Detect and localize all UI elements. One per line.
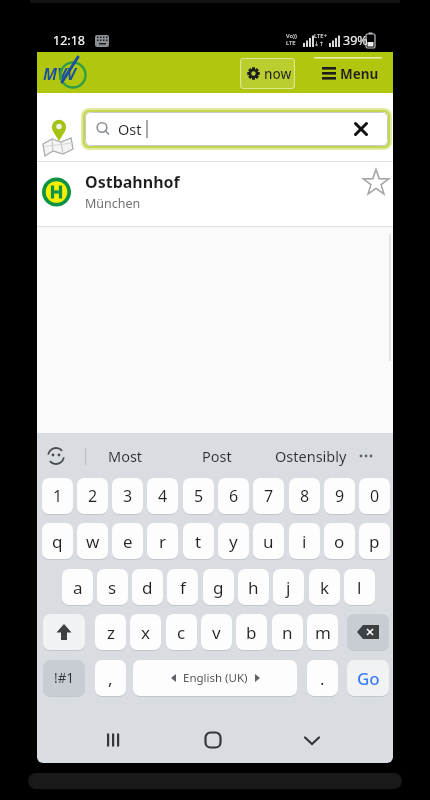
staticText: f [180, 576, 186, 599]
button[interactable]: 8 [289, 478, 320, 514]
button[interactable]: 2 [77, 478, 108, 514]
button[interactable]: n [272, 614, 303, 650]
button[interactable]: r [147, 523, 178, 559]
staticText: a [73, 576, 83, 599]
staticText: ↓↑ [314, 40, 325, 47]
button[interactable]: v [201, 614, 232, 650]
button[interactable]: g [203, 569, 234, 605]
button[interactable]: o [324, 523, 355, 559]
staticText: z [107, 621, 115, 644]
button[interactable]: e [112, 523, 143, 559]
button[interactable]: !#1 [43, 660, 85, 696]
staticText: MVV [43, 63, 76, 85]
button[interactable] [43, 614, 85, 650]
button[interactable]: . [307, 660, 338, 696]
button[interactable]: c [166, 614, 197, 650]
button[interactable]: 5 [183, 478, 214, 514]
staticText: j [286, 576, 291, 599]
staticText: English (UK) [183, 670, 248, 686]
staticText: e [123, 530, 133, 553]
button[interactable]: Ostbahnhof [37, 162, 393, 226]
button[interactable]: u [253, 523, 284, 559]
button[interactable]: f [167, 569, 198, 605]
button[interactable]: q [42, 523, 73, 559]
staticText: Most [108, 446, 143, 466]
staticText: 39% [343, 32, 368, 49]
staticText: x [141, 621, 150, 644]
staticText: Vo)) [286, 32, 297, 40]
button[interactable]: s [97, 569, 128, 605]
button[interactable]: h [238, 569, 269, 605]
staticText: 8 [300, 485, 310, 507]
button[interactable]: English (UK) [133, 660, 297, 696]
button[interactable]: i [289, 523, 320, 559]
staticText: !#1 [54, 669, 75, 687]
staticText: Ostbahnhof [85, 171, 180, 193]
button[interactable]: now [240, 58, 295, 89]
button[interactable]: d [132, 569, 163, 605]
button[interactable]: p [359, 523, 390, 559]
staticText: v [212, 621, 221, 644]
staticText: now [264, 65, 292, 83]
staticText: c [177, 621, 186, 644]
staticText: k [320, 576, 330, 599]
staticText: w [86, 530, 100, 553]
staticText: g [213, 576, 224, 599]
staticText: Ost [118, 119, 142, 139]
staticText: d [142, 576, 153, 599]
button[interactable] [347, 614, 389, 650]
button[interactable]: a [62, 569, 93, 605]
staticText: LTE+ [314, 32, 328, 40]
staticText: 6 [229, 485, 239, 507]
staticText: Menu [340, 65, 379, 83]
staticText: 3 [123, 485, 133, 507]
button[interactable]: l [344, 569, 375, 605]
staticText: LTE [286, 39, 296, 47]
button[interactable]: Go [347, 660, 389, 696]
button[interactable]: z [95, 614, 126, 650]
button[interactable]: 7 [253, 478, 284, 514]
button[interactable] [90, 716, 138, 763]
button[interactable]: b [236, 614, 267, 650]
staticText: r [159, 530, 167, 553]
staticText: 9 [335, 485, 345, 507]
button[interactable]: j [273, 569, 304, 605]
staticText: 12:18 [53, 32, 85, 49]
staticText: p [369, 530, 380, 553]
staticText: 2 [88, 485, 98, 507]
button[interactable]: k [309, 569, 340, 605]
staticText: Ostensibly [275, 446, 347, 466]
button[interactable]: 4 [147, 478, 178, 514]
button[interactable]: , [95, 660, 126, 696]
button[interactable]: 1 [42, 478, 73, 514]
button[interactable]: Ost [81, 108, 392, 150]
staticText: m [315, 621, 331, 644]
staticText: n [282, 621, 293, 644]
staticText: Go [357, 667, 380, 690]
staticText: q [52, 530, 63, 553]
button[interactable]: 3 [112, 478, 143, 514]
staticText: o [334, 530, 345, 553]
staticText: , [108, 667, 113, 690]
button[interactable] [41, 444, 75, 470]
button[interactable]: t [183, 523, 214, 559]
staticText: s [108, 576, 117, 599]
button[interactable] [288, 716, 336, 763]
button[interactable]: m [307, 614, 338, 650]
staticText: u [263, 530, 274, 553]
staticText: München [85, 195, 141, 212]
staticText: h [248, 576, 259, 599]
button[interactable]: x [130, 614, 161, 650]
button[interactable] [189, 716, 237, 763]
button[interactable]: w [77, 523, 108, 559]
staticText: b [246, 621, 257, 644]
staticText: l [357, 576, 362, 599]
staticText: t [195, 530, 202, 553]
button[interactable]: Menu [309, 57, 387, 90]
button[interactable]: 0 [359, 478, 390, 514]
button[interactable]: 9 [324, 478, 355, 514]
button[interactable]: 6 [218, 478, 249, 514]
staticText: 4 [158, 485, 168, 507]
staticText: Post [202, 446, 232, 466]
button[interactable]: y [218, 523, 249, 559]
